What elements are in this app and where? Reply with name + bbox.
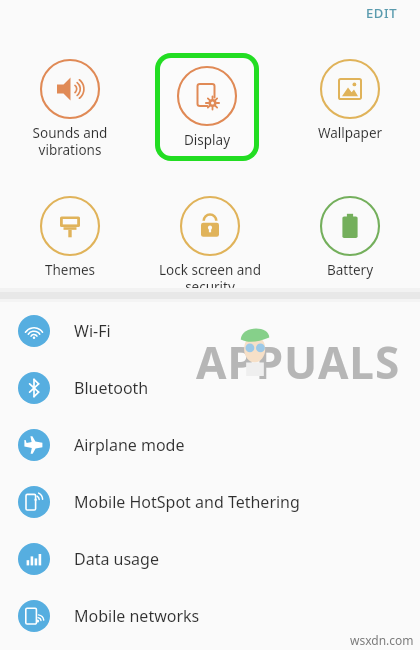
staticText: Data usage	[74, 548, 159, 570]
button[interactable]: Data usage	[0, 530, 420, 587]
staticText: APPUALS	[196, 332, 401, 392]
staticText: Mobile HotSpot and Tethering	[74, 491, 300, 513]
button[interactable]: Battery	[295, 190, 405, 298]
staticText: Battery	[295, 261, 405, 279]
staticText: Bluetooth	[74, 377, 149, 399]
button[interactable]: EDIT	[362, 2, 402, 24]
button[interactable]: Mobile HotSpot and Tethering	[0, 473, 420, 530]
staticText: Lock screen and security	[155, 261, 265, 296]
staticText: Themes	[15, 261, 125, 279]
button[interactable]: Bluetooth	[0, 359, 420, 416]
button[interactable]: Wi-Fi	[0, 302, 420, 359]
staticText: Sounds and vibrations	[15, 124, 125, 159]
staticText: Wallpaper	[295, 124, 405, 142]
staticText: Wi-Fi	[74, 320, 111, 342]
staticText: wsxdn.com	[350, 632, 414, 648]
button[interactable]: Sounds and vibrations	[15, 53, 125, 161]
staticText: Airplane mode	[74, 434, 185, 456]
staticText: EDIT	[366, 4, 398, 22]
button[interactable]: Themes	[15, 190, 125, 298]
button[interactable]: Wallpaper	[295, 53, 405, 161]
button[interactable]: Lock screen and security	[155, 190, 265, 298]
button[interactable]: Mobile networks	[0, 587, 420, 644]
button[interactable]: Airplane mode	[0, 416, 420, 473]
staticText: Mobile networks	[74, 605, 200, 627]
button[interactable]: Display	[155, 53, 259, 161]
staticText: Display	[160, 131, 254, 149]
